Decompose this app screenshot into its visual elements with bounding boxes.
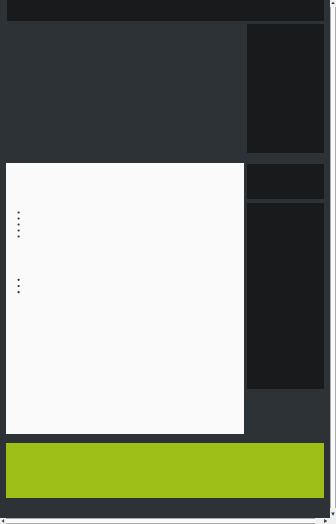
button[interactable]: Scroll left [0,518,6,524]
button[interactable]: Scroll up [330,0,336,6]
button[interactable]: Scroll down [330,509,336,518]
button[interactable]: Content card [6,163,244,434]
button[interactable]: Scroll right [321,518,330,524]
